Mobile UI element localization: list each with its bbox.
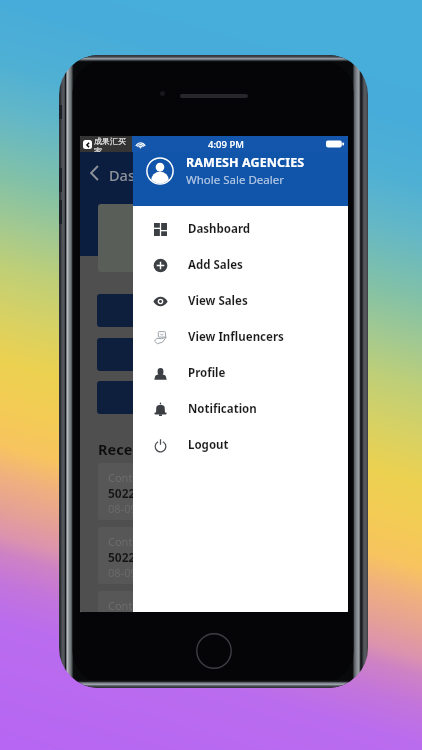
- button[interactable]: Dashboard: [133, 211, 348, 247]
- staticText: RAMESH AGENCIES: [186, 154, 305, 171]
- button[interactable]: Logout: [133, 427, 348, 463]
- button[interactable]: View Influencers: [133, 319, 348, 355]
- staticText: 4:09 PM: [136, 138, 316, 151]
- staticText: Whole Sale Dealer: [186, 172, 284, 188]
- staticText: View Sales: [188, 293, 248, 309]
- staticText: 08-09-2020: [108, 501, 166, 516]
- staticText: Contract No: [108, 598, 170, 612]
- staticText: Logout: [188, 437, 229, 453]
- staticText: Dashboard: [109, 165, 186, 185]
- staticText: Contract No: [108, 470, 170, 485]
- staticText: Add Sales: [188, 257, 243, 273]
- staticText: 08-09-2020: [108, 565, 166, 580]
- button[interactable]: View Sales: [133, 283, 348, 319]
- staticText: 成果汇买家: [94, 136, 132, 152]
- button[interactable]: Profile: [133, 355, 348, 391]
- staticText: Recent Sales: [98, 439, 189, 459]
- button[interactable]: Add Sales: [133, 247, 348, 283]
- button[interactable]: RAMESH AGENCIES: [133, 136, 348, 206]
- staticText: View Influencers: [188, 329, 284, 345]
- staticText: Notification: [188, 401, 257, 417]
- staticText: 502203: [108, 549, 150, 565]
- staticText: 502203: [108, 485, 150, 501]
- staticText: Dashboard: [188, 221, 251, 237]
- button[interactable]: Notification: [133, 391, 348, 427]
- staticText: Contract No: [108, 534, 170, 549]
- staticText: Profile: [188, 365, 226, 381]
